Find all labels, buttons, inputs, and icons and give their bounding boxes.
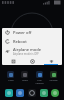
button[interactable]: Airplane mode xyxy=(2,46,62,56)
button[interactable]: App 1 xyxy=(16,89,24,97)
staticText: Airplane mode is OFF xyxy=(13,52,39,56)
staticText: Airplane mode xyxy=(13,47,42,52)
staticText: Reboot xyxy=(13,39,27,44)
staticText: Tool Cabinet xyxy=(34,79,45,85)
button[interactable]: App 0 xyxy=(5,89,13,97)
button[interactable]: Music xyxy=(19,71,30,82)
staticText: Clock xyxy=(8,79,14,82)
button[interactable]: Screenshot xyxy=(5,57,21,65)
button[interactable]: Bug report xyxy=(43,57,59,65)
button[interactable]: Clock xyxy=(5,71,16,82)
staticText: Power off xyxy=(13,30,32,35)
button[interactable]: App 2 xyxy=(28,89,36,97)
button[interactable]: Assist xyxy=(24,57,40,65)
button[interactable]: App 3 xyxy=(40,89,48,97)
button[interactable]: App 4 xyxy=(51,89,59,97)
staticText: Chrome xyxy=(49,79,58,82)
button[interactable]: Chrome xyxy=(48,71,59,82)
button[interactable]: Power off xyxy=(2,28,62,37)
staticText: Music xyxy=(22,79,28,82)
button[interactable]: Tool Cabinet xyxy=(34,71,45,85)
button[interactable]: Reboot xyxy=(2,37,62,46)
